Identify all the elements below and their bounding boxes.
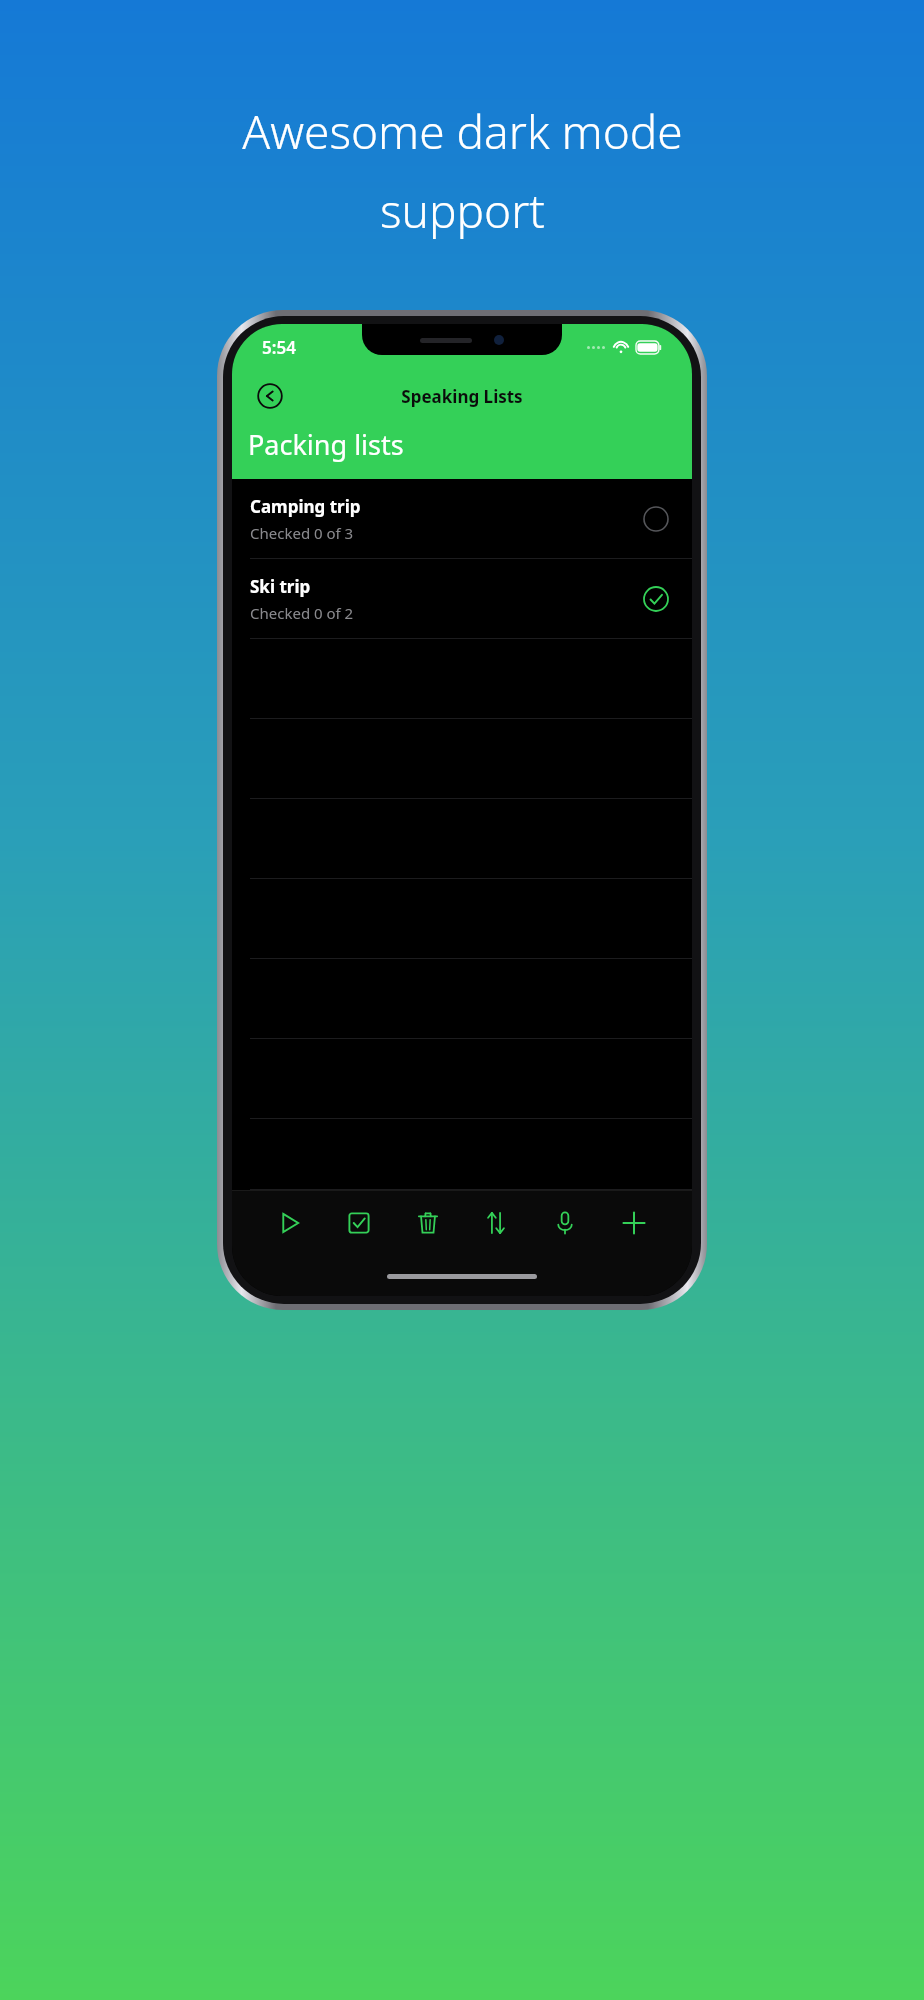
staticText: Camping trip <box>250 495 361 518</box>
button[interactable]: Record <box>542 1200 588 1246</box>
staticText: 5:54 <box>262 336 296 359</box>
button[interactable]: Check <box>336 1200 382 1246</box>
staticText: Checked 0 of 2 <box>250 603 354 623</box>
button[interactable]: Back <box>248 374 292 418</box>
staticText: Packing lists <box>248 426 404 463</box>
button[interactable]: Play <box>267 1200 313 1246</box>
staticText: Speaking Lists <box>401 385 523 408</box>
button[interactable]: Unchecked <box>640 503 672 535</box>
button[interactable]: Add <box>611 1200 657 1246</box>
staticText: Checked 0 of 3 <box>250 523 354 543</box>
button[interactable]: Delete <box>405 1200 451 1246</box>
staticText: Awesome dark mode <box>242 100 683 163</box>
staticText: Ski trip <box>250 575 311 598</box>
button[interactable]: Sort <box>473 1200 519 1246</box>
button[interactable]: Camping trip <box>232 479 692 559</box>
staticText: support <box>380 179 545 242</box>
button[interactable]: Ski trip <box>232 559 692 639</box>
button[interactable]: Checked <box>640 583 672 615</box>
